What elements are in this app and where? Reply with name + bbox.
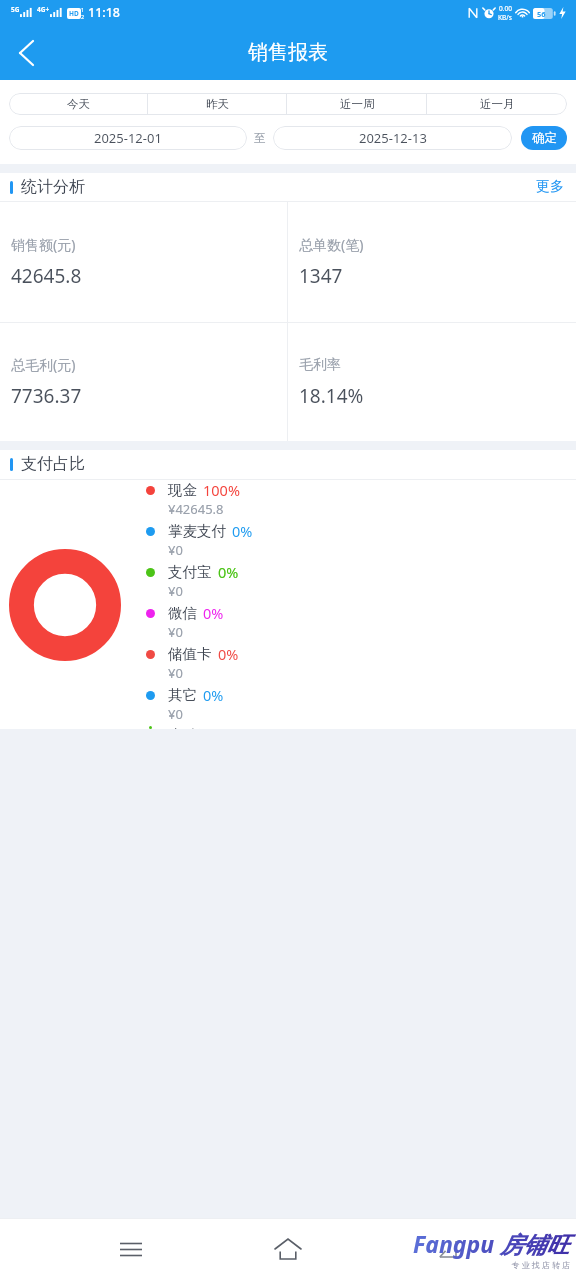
- staticText: 现金: [168, 481, 197, 499]
- staticText: 0.00: [499, 4, 512, 13]
- button[interactable]: 小精灵: [146, 726, 576, 729]
- staticText: 18.14%: [299, 383, 364, 409]
- button[interactable]: 确定: [521, 126, 567, 150]
- button[interactable]: 其它: [146, 685, 576, 726]
- staticText: 掌麦支付: [168, 522, 226, 540]
- staticText: 近一周: [340, 97, 375, 111]
- staticText: 0%: [203, 603, 224, 623]
- staticText: 11:18: [88, 4, 121, 21]
- staticText: ¥0: [168, 582, 183, 600]
- staticText: 4G+: [37, 5, 50, 14]
- button[interactable]: 近一月: [427, 93, 567, 115]
- staticText: HD: [69, 9, 79, 18]
- staticText: 1347: [299, 263, 343, 289]
- button[interactable]: 近一周: [287, 93, 427, 115]
- staticText: 更多: [536, 178, 564, 196]
- button[interactable]: 现金: [146, 480, 576, 521]
- staticText: 0%: [218, 562, 239, 582]
- button[interactable]: Home: [261, 1222, 315, 1276]
- staticText: ¥0: [168, 623, 183, 641]
- button[interactable]: 总单数(笔): [288, 202, 576, 322]
- staticText: 0%: [232, 521, 253, 541]
- staticText: 7736.37: [11, 383, 82, 409]
- button[interactable]: 昨天: [148, 93, 287, 115]
- button[interactable]: 今天: [9, 93, 148, 115]
- staticText: 今天: [67, 97, 90, 111]
- staticText: 0%: [218, 644, 239, 664]
- staticText: 销售报表: [248, 40, 328, 65]
- staticText: 1: [81, 6, 85, 13]
- staticText: 2025-12-13: [359, 129, 427, 147]
- staticText: 支付占比: [21, 454, 85, 474]
- staticText: 毛利率: [299, 356, 341, 374]
- staticText: 5G: [11, 5, 20, 14]
- staticText: 储值卡: [168, 645, 212, 663]
- staticText: ¥42645.8: [168, 500, 224, 518]
- button[interactable]: 支付宝: [146, 562, 576, 603]
- staticText: 56: [537, 9, 546, 19]
- staticText: KB/s: [498, 13, 512, 22]
- staticText: 至: [254, 131, 266, 145]
- staticText: ¥0: [168, 664, 183, 682]
- staticText: 销售额(元): [11, 235, 76, 254]
- staticText: ¥0: [168, 541, 183, 559]
- staticText: 总单数(笔): [299, 235, 364, 254]
- staticText: 确定: [532, 130, 557, 146]
- button[interactable]: 储值卡: [146, 644, 576, 685]
- button[interactable]: Back: [0, 27, 52, 79]
- staticText: 100%: [203, 480, 240, 500]
- staticText: 统计分析: [21, 177, 85, 197]
- staticText: 0%: [203, 685, 224, 705]
- staticText: 2: [81, 13, 85, 20]
- button[interactable]: 掌麦支付: [146, 521, 576, 562]
- staticText: 42645.8: [11, 263, 82, 289]
- staticText: ¥0: [168, 705, 183, 723]
- button[interactable]: 销售额(元): [0, 202, 287, 322]
- staticText: 支付宝: [168, 563, 212, 581]
- button[interactable]: 2025-12-13: [273, 126, 512, 150]
- staticText: 总毛利(元): [11, 355, 76, 374]
- staticText: 专 业 找 店 转 店: [511, 1259, 570, 1270]
- button[interactable]: 更多: [534, 175, 566, 199]
- button[interactable]: 微信: [146, 603, 576, 644]
- button[interactable]: 总毛利(元): [0, 323, 287, 441]
- staticText: 其它: [168, 686, 197, 704]
- staticText: 微信: [168, 604, 197, 622]
- staticText: 小精灵: [168, 726, 212, 729]
- staticText: 2025-12-01: [94, 129, 162, 147]
- button[interactable]: Recent apps: [104, 1222, 158, 1276]
- button[interactable]: Back: [419, 1222, 473, 1276]
- button[interactable]: 2025-12-01: [9, 126, 247, 150]
- button[interactable]: 毛利率: [288, 323, 576, 441]
- staticText: 昨天: [206, 97, 229, 111]
- staticText: Fangpu 房铺旺: [413, 1228, 570, 1259]
- staticText: 近一月: [480, 97, 515, 111]
